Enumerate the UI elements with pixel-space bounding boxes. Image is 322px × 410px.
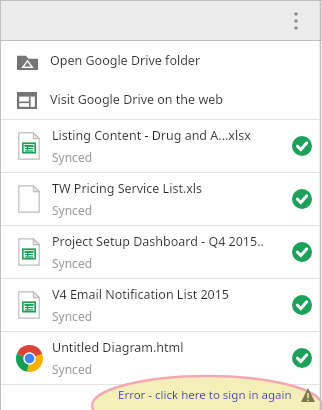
other: Synced (292, 295, 312, 315)
staticText: V4 Email Notification List 2015 (52, 286, 229, 303)
staticText: Project Setup Dashboard - Q4 2015.. (52, 233, 264, 250)
other: Synced (292, 242, 312, 262)
staticText: Synced (52, 308, 93, 324)
staticText: Open Google Drive folder (50, 52, 201, 69)
staticText: Listing Content - Drug and A...xlsx (52, 127, 251, 144)
other: Synced (292, 136, 312, 156)
staticText: Synced (52, 255, 93, 271)
button[interactable]: TW Pricing Service List.xls (0, 173, 322, 225)
other: Synced (292, 189, 312, 209)
staticText: Synced (52, 202, 93, 218)
staticText: Untitled Diagram.html (52, 339, 184, 356)
button[interactable]: Project Setup Dashboard - Q4 2015.. (0, 226, 322, 278)
button[interactable]: Error - click here to sign in again (92, 376, 322, 410)
button[interactable]: V4 Email Notification List 2015 (0, 279, 322, 331)
button[interactable]: Listing Content - Drug and A...xlsx (0, 120, 322, 172)
staticText: Synced (52, 149, 93, 165)
staticText: Error - click here to sign in again (118, 387, 292, 403)
other: Synced (292, 348, 312, 368)
staticText: TW Pricing Service List.xls (52, 180, 203, 197)
button[interactable]: More options (284, 9, 308, 33)
staticText: Visit Google Drive on the web (50, 91, 223, 108)
staticText: Synced (52, 361, 93, 377)
button[interactable]: Open Google Drive folder (0, 41, 322, 80)
button[interactable]: Visit Google Drive on the web (0, 80, 322, 119)
button[interactable]: Untitled Diagram.html (0, 332, 322, 384)
